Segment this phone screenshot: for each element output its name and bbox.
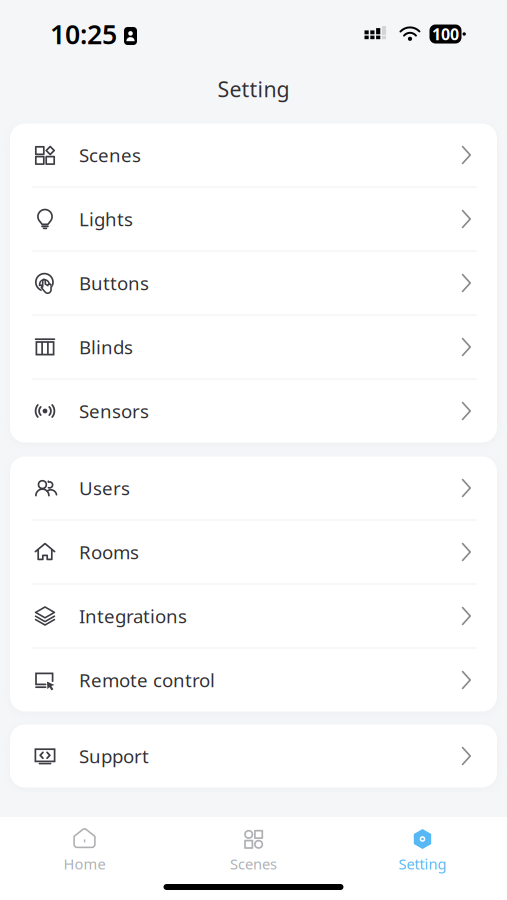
staticText: Scenes [230, 854, 277, 873]
staticText: Setting [217, 75, 289, 103]
staticText: Users [79, 476, 130, 500]
staticText: Home [63, 854, 105, 873]
button[interactable]: Scenes [10, 123, 497, 186]
button[interactable]: Blinds [10, 315, 497, 378]
button[interactable]: Lights [10, 187, 497, 250]
staticText: Sensors [79, 399, 149, 423]
button[interactable]: Buttons [10, 251, 497, 314]
staticText: Blinds [79, 335, 133, 359]
button[interactable]: Integrations [10, 584, 497, 647]
staticText: Scenes [79, 143, 141, 167]
staticText: Integrations [79, 604, 187, 628]
staticText: Buttons [79, 271, 149, 295]
button[interactable]: Rooms [10, 520, 497, 583]
button[interactable]: Setting [338, 827, 507, 873]
button[interactable]: Scenes [169, 827, 338, 873]
button[interactable]: Support [10, 724, 497, 787]
staticText: 10:25 [50, 16, 117, 52]
staticText: Setting [398, 854, 446, 873]
button[interactable]: Home [0, 827, 169, 873]
staticText: Lights [79, 207, 133, 231]
staticText: Remote control [79, 668, 215, 692]
button[interactable]: Sensors [10, 379, 497, 442]
staticText: Rooms [79, 540, 139, 564]
button[interactable]: Users [10, 456, 497, 519]
button[interactable]: Remote control [10, 648, 497, 711]
staticText: Support [79, 744, 149, 768]
staticText: 100 [432, 23, 459, 45]
